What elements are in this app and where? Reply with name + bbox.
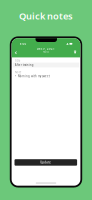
staticText: Note [15,70,22,74]
staticText: Dec 9, 2021 [37,47,55,50]
button[interactable]: Back [12,49,20,56]
staticText: Note [42,50,49,53]
staticText: Title [15,59,21,62]
staticText: After training [15,63,34,67]
staticText: Update [40,161,51,164]
button[interactable]: Delete note [71,48,79,56]
staticText: 8:00 [20,42,27,46]
staticText: Quick notes [19,10,73,22]
staticText: • Morning with my sweet [15,74,50,78]
button[interactable]: Update [14,159,77,166]
